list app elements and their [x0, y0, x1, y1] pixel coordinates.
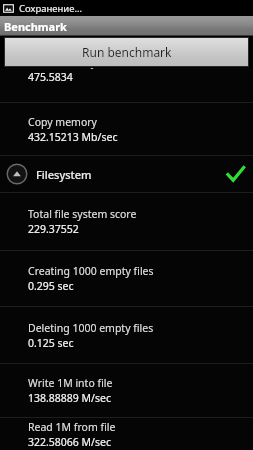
staticText: Creating 1000 empty files — [28, 264, 154, 278]
button[interactable]: Write 1M into file — [0, 364, 253, 417]
other: Collapse Filesystem — [6, 163, 28, 185]
button[interactable]: Copy memory — [0, 103, 253, 155]
staticText: 322.58066 M/sec — [28, 435, 112, 449]
staticText: 432.15213 Mb/sec — [28, 130, 118, 144]
staticText: Copy memory — [28, 115, 97, 129]
staticText: 0.295 sec — [28, 279, 74, 293]
staticText: Benchmark — [4, 19, 67, 34]
button[interactable]: Run benchmark — [5, 38, 248, 66]
staticText: Сохранение... — [19, 2, 83, 15]
button[interactable]: Collapse Filesystem — [0, 156, 253, 192]
staticText: Deleting 1000 empty files — [28, 321, 154, 335]
staticText: 0.125 sec — [28, 336, 74, 350]
staticText: Total file system score — [28, 207, 137, 221]
other: Completed — [226, 165, 245, 184]
button[interactable]: Total memory score — [0, 68, 253, 86]
staticText: 138.88889 M/sec — [28, 391, 112, 405]
staticText: 229.37552 — [28, 222, 79, 236]
button[interactable]: Read 1M from file — [0, 418, 253, 450]
staticText: Total memory score — [28, 68, 126, 69]
button[interactable]: Creating 1000 empty files — [0, 251, 253, 306]
button[interactable]: Deleting 1000 empty files — [0, 307, 253, 363]
staticText: Run benchmark — [82, 44, 172, 60]
staticText: 475.5834 — [28, 70, 73, 84]
staticText: Write 1M into file — [28, 376, 113, 390]
staticText: Filesystem — [36, 167, 92, 182]
staticText: Read 1M from file — [28, 420, 116, 434]
button[interactable]: Total file system score — [0, 193, 253, 250]
